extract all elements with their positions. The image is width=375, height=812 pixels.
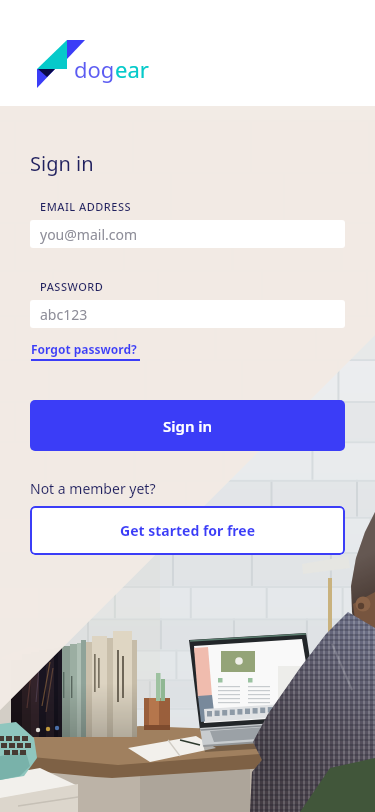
staticText: PASSWORD: [40, 279, 104, 294]
staticText: ear: [115, 54, 149, 84]
staticText: Get started for free: [120, 521, 256, 540]
staticText: Forgot password?: [31, 341, 137, 357]
staticText: Not a member yet?: [30, 479, 156, 498]
staticText: dog: [74, 54, 115, 84]
button[interactable]: Get started for free: [30, 506, 345, 555]
button[interactable]: dog: [33, 40, 143, 90]
button[interactable]: you@mail.com: [30, 220, 345, 248]
staticText: abc123: [40, 305, 88, 324]
staticText: Sign in: [30, 150, 94, 177]
staticText: EMAIL ADDRESS: [40, 199, 132, 214]
button[interactable]: abc123: [30, 300, 345, 328]
button[interactable]: Sign in: [30, 400, 345, 451]
staticText: Sign in: [163, 416, 213, 436]
button[interactable]: Forgot password?: [30, 341, 140, 362]
staticText: you@mail.com: [40, 225, 138, 244]
